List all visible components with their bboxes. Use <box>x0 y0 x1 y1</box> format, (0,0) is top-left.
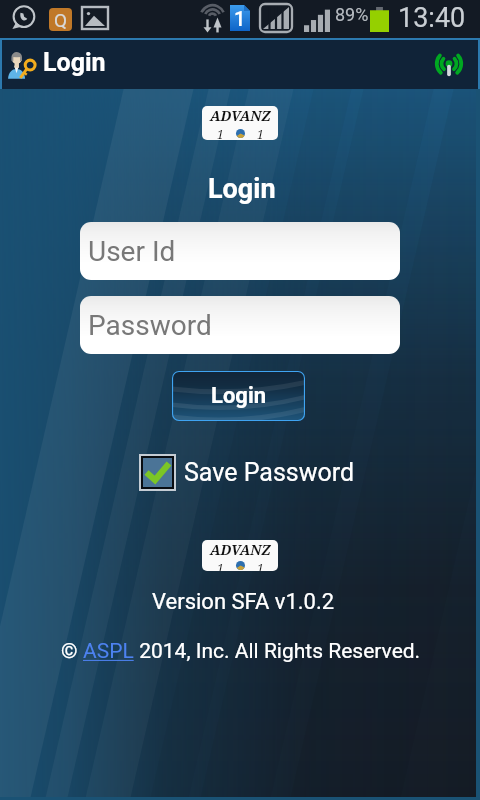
staticText: 1 <box>217 560 224 571</box>
staticText: ADVANZ <box>210 540 271 559</box>
staticText: Save Password <box>184 458 355 487</box>
staticText: 1 <box>234 7 246 30</box>
staticText: ADVANZ <box>210 106 271 125</box>
staticText: User Id <box>88 235 176 268</box>
staticText: 1 <box>217 126 224 140</box>
button[interactable]: Login <box>172 371 305 421</box>
button[interactable]: Password <box>80 296 400 354</box>
staticText: Login <box>211 383 267 409</box>
staticText: 2014, Inc. All Rights Reserved. <box>134 639 421 664</box>
staticText: Q <box>54 9 68 31</box>
staticText: 13:40 <box>398 2 466 34</box>
staticText: 89% <box>335 4 369 25</box>
staticText: Login <box>208 173 276 205</box>
staticText: Password <box>88 309 212 342</box>
staticText: Login <box>43 48 106 77</box>
button[interactable]: Network status <box>428 44 470 86</box>
button[interactable]: User Id <box>80 222 400 280</box>
staticText: Version SFA v1.0.2 <box>152 589 335 615</box>
button[interactable]: ASPL <box>83 639 134 664</box>
staticText: © <box>61 639 83 664</box>
staticText: 1 <box>257 560 264 571</box>
staticText: 1 <box>257 126 264 140</box>
staticText: ASPL <box>83 639 134 664</box>
button[interactable]: Save Password <box>139 454 355 491</box>
